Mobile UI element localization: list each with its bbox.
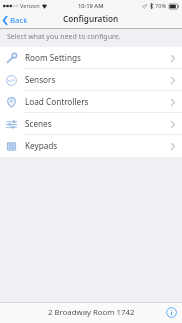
button[interactable]: Scenes <box>0 113 182 135</box>
staticText: 2 Broadway Room 1742 <box>48 307 135 318</box>
staticText: 70% <box>155 2 167 10</box>
staticText: Room Settings <box>25 52 81 63</box>
staticText: Keypads <box>25 140 58 151</box>
button[interactable]: Sensors <box>0 69 182 91</box>
button[interactable]: Info <box>164 305 179 320</box>
button[interactable]: Load Controllers <box>0 91 182 113</box>
staticText: Scenes <box>25 118 52 129</box>
staticText: Back <box>10 15 28 26</box>
button[interactable]: Keypads <box>0 135 182 157</box>
staticText: Load Controllers <box>25 96 89 107</box>
staticText: Select what you need to configure. <box>7 32 121 42</box>
staticText: 10:19 AM <box>78 2 104 10</box>
staticText: Verizon <box>20 2 40 10</box>
staticText: Sensors <box>25 74 56 85</box>
staticText: Configuration <box>63 13 119 24</box>
button[interactable]: Back <box>0 12 32 29</box>
button[interactable]: Room Settings <box>0 47 182 69</box>
